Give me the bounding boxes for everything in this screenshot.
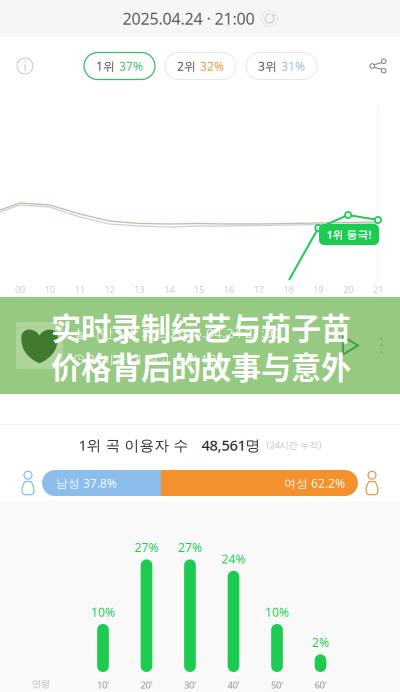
staticText: 价格背后的故事与意外 bbox=[51, 344, 351, 388]
staticText: 10' bbox=[97, 679, 109, 691]
staticText: 31% bbox=[281, 58, 305, 74]
staticText: 17 bbox=[254, 283, 264, 296]
button[interactable]: 1위 bbox=[84, 52, 155, 79]
staticText: 16 bbox=[224, 283, 234, 296]
staticText: 30' bbox=[184, 679, 196, 691]
staticText: 실시간 1위 차트 2025.04.24 21:00 bbox=[74, 324, 281, 341]
staticText: 13 bbox=[134, 283, 144, 296]
staticText: (24시간 누적) bbox=[266, 439, 321, 451]
staticText: 10% bbox=[265, 604, 289, 620]
staticText: 27% bbox=[178, 539, 202, 555]
staticText: 24시간 내 최고 순위 1위! bbox=[88, 351, 223, 367]
staticText: 48,561명 bbox=[201, 435, 260, 455]
staticText: 21 bbox=[373, 283, 383, 296]
staticText: 2위 bbox=[177, 58, 196, 74]
staticText: 연령 bbox=[32, 678, 50, 690]
staticText: 20 bbox=[343, 283, 353, 296]
staticText: 实时录制综艺与茄子苗 bbox=[51, 305, 351, 349]
staticText: 2% bbox=[312, 634, 329, 650]
button[interactable]: Share bbox=[363, 53, 393, 79]
staticText: 27% bbox=[134, 539, 158, 555]
staticText: 37% bbox=[119, 58, 143, 74]
staticText: 09 bbox=[15, 283, 25, 296]
staticText: 24% bbox=[221, 551, 245, 567]
staticText: 50' bbox=[271, 679, 283, 691]
staticText: 32% bbox=[200, 58, 224, 74]
staticText: 15 bbox=[194, 283, 204, 296]
staticText: 40' bbox=[227, 679, 239, 691]
staticText: 10 bbox=[45, 283, 55, 296]
staticText: i bbox=[23, 58, 26, 74]
button[interactable]: 3위 bbox=[246, 52, 317, 79]
staticText: 10% bbox=[91, 604, 115, 620]
staticText: 3위 bbox=[258, 58, 277, 74]
staticText: 여성 62.2% bbox=[284, 475, 345, 491]
staticText: 60' bbox=[314, 679, 326, 691]
staticText: 20' bbox=[140, 679, 152, 691]
button[interactable]: Info bbox=[12, 53, 38, 79]
staticText: 2025.04.24 · 21:00 bbox=[122, 8, 254, 29]
staticText: 19 bbox=[313, 283, 323, 296]
staticText: 14 bbox=[164, 283, 174, 296]
button[interactable]: 2위 bbox=[165, 52, 236, 79]
staticText: 1위 등극! bbox=[326, 227, 371, 242]
staticText: 11 bbox=[75, 283, 85, 296]
staticText: 1위 bbox=[96, 58, 115, 74]
staticText: 1위 곡 이용자 수 bbox=[78, 435, 188, 455]
staticText: 12 bbox=[104, 283, 114, 296]
button[interactable]: Refresh bbox=[261, 10, 277, 26]
staticText: 18 bbox=[283, 283, 293, 296]
staticText: 남성 37.8% bbox=[56, 475, 117, 491]
